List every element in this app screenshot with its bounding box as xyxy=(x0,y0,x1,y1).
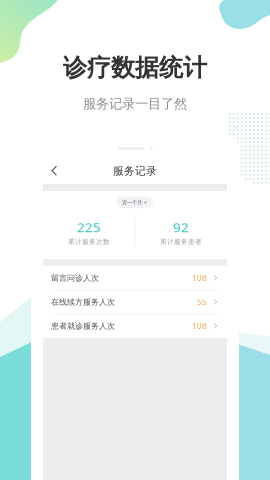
staticText: 累计服务次数 xyxy=(68,238,110,246)
button[interactable]: 患者就诊服务人次 xyxy=(43,314,227,338)
button[interactable]: 留言问诊人次 xyxy=(43,266,227,290)
staticText: 留言问诊人次 xyxy=(51,273,99,283)
staticText: 55 xyxy=(197,297,207,307)
staticText: ▾ xyxy=(144,199,147,205)
staticText: 诊疗数据统计 xyxy=(63,53,207,83)
staticText: 患者就诊服务人次 xyxy=(51,321,115,331)
staticText: 服务记录 xyxy=(113,164,157,177)
staticText: 225 xyxy=(77,218,101,236)
staticText: 服务记录一目了然 xyxy=(83,95,187,112)
staticText: 108 xyxy=(192,321,207,331)
staticText: 108 xyxy=(192,273,207,283)
button[interactable]: 近一个月 xyxy=(117,197,153,208)
button[interactable]: Back xyxy=(43,158,68,183)
button[interactable]: 在线续方服务人次 xyxy=(43,290,227,314)
staticText: 92 xyxy=(173,218,189,236)
staticText: 在线续方服务人次 xyxy=(51,297,115,307)
staticText: 累计服务患者 xyxy=(160,238,202,246)
staticText: 近一个月 xyxy=(122,199,142,206)
